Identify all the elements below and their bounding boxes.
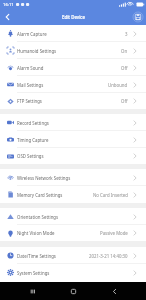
staticText: 16:11 [3,2,14,8]
staticText: Record Settings [17,120,49,126]
staticText: Date/Time Settings [17,253,56,259]
staticText: No Card Inserted [93,192,128,198]
button[interactable]: Memory Card Settings [0,186,146,203]
staticText: Off [121,65,128,71]
staticText: 3 [125,31,128,37]
staticText: FTP Settings [17,98,42,104]
button[interactable]: Wireless Network Settings [0,169,146,186]
button[interactable]: Record Settings [0,114,146,131]
staticText: Edit Device [62,14,85,20]
staticText: Passive Mode [100,230,128,236]
button[interactable]: Home [64,282,82,300]
staticText: Orientation Settings [17,214,59,220]
button[interactable]: Alarm Sound [0,59,146,76]
staticText: Memory Card Settings [17,192,63,198]
staticText: Timing Capture [17,137,49,143]
button[interactable]: FTP Settings [0,93,146,109]
staticText: Humanoid Settings [17,48,57,54]
button[interactable]: OSD Settings [0,148,146,164]
staticText: Alarm Capture [17,31,47,37]
staticText: Night Vision Mode [17,230,55,236]
button[interactable]: Alarm Capture [0,25,146,42]
button[interactable]: Night Vision Mode [0,225,146,241]
staticText: OSD Settings [17,153,44,159]
staticText: Off [121,98,128,104]
button[interactable]: Humanoid Settings [0,42,146,59]
button[interactable]: Orientation Settings [0,208,146,225]
button[interactable]: Back [105,282,123,300]
button[interactable]: Timing Capture [0,131,146,148]
button[interactable]: System Settings [0,264,146,281]
staticText: System Settings [17,270,50,276]
button[interactable]: Save [130,9,146,25]
button[interactable]: Back [0,9,15,25]
staticText: Alarm Sound [17,65,44,71]
staticText: Unbound [108,82,128,88]
button[interactable]: Mail Settings [0,76,146,93]
staticText: Mail Settings [17,82,44,88]
staticText: On [121,48,128,54]
staticText: 2021-3-21 14:40:30 [89,253,128,259]
button[interactable]: Recent apps [23,282,41,300]
button[interactable]: Date/Time Settings [0,247,146,264]
staticText: Wireless Network Settings [17,175,71,181]
